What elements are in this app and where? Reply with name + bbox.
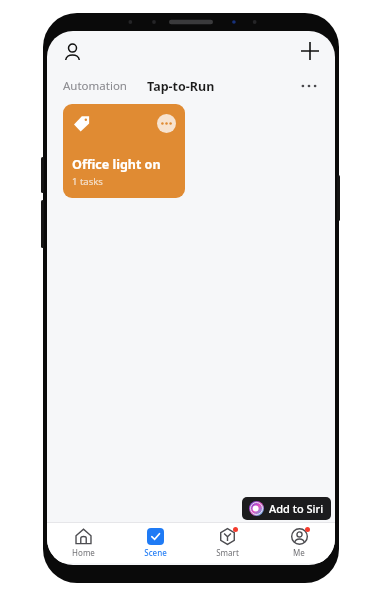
button[interactable]: Tap-to-Run bbox=[145, 74, 217, 99]
button[interactable]: Add bbox=[293, 34, 327, 68]
staticText: Add to Siri bbox=[269, 501, 324, 516]
staticText: 1 tasks bbox=[72, 175, 103, 188]
button[interactable]: Home bbox=[47, 526, 119, 560]
button[interactable]: More options bbox=[295, 72, 323, 100]
staticText: Scene bbox=[144, 547, 167, 558]
button[interactable]: Add to Siri bbox=[242, 497, 331, 520]
button[interactable]: Scene options bbox=[63, 104, 185, 198]
staticText: Me bbox=[293, 547, 305, 558]
button[interactable]: Smart bbox=[191, 526, 263, 560]
staticText: Smart bbox=[216, 547, 239, 558]
button[interactable]: Me bbox=[263, 526, 335, 560]
button[interactable]: Automation bbox=[61, 74, 129, 98]
button[interactable]: Scene bbox=[119, 526, 191, 560]
staticText: Home bbox=[72, 547, 95, 558]
button[interactable]: Scene options bbox=[157, 114, 176, 133]
button[interactable]: Profile bbox=[55, 34, 89, 68]
staticText: Tap-to-Run bbox=[147, 78, 215, 95]
staticText: Office light on bbox=[72, 156, 161, 173]
staticText: Automation bbox=[63, 78, 127, 94]
